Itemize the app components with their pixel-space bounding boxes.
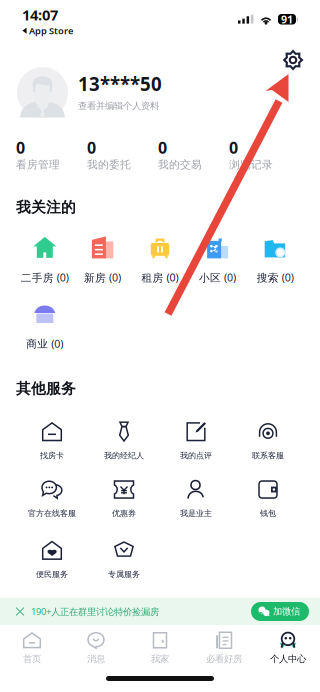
staticText: 0 [16, 137, 25, 158]
button[interactable]: 0 [87, 137, 158, 171]
button[interactable]: 租房 (0) [131, 235, 189, 285]
staticText: 优惠券 [112, 508, 136, 518]
staticText: 我家 [151, 653, 169, 665]
staticText: 租房 (0) [141, 270, 178, 285]
staticText: 0 [158, 137, 167, 158]
staticText: 我关注的 [16, 198, 76, 216]
staticText: 91 [281, 12, 293, 26]
button[interactable]: 小区 (0) [189, 235, 246, 285]
staticText: 查看并编辑个人资料 [78, 100, 159, 112]
button[interactable]: 13****50 [0, 46, 320, 118]
staticText: 商业 (0) [26, 336, 63, 351]
staticText: 14:07 [22, 5, 58, 24]
button[interactable]: 0 [16, 137, 87, 171]
staticText: 搜索 (0) [257, 270, 294, 285]
staticText: 专属服务 [108, 569, 140, 579]
staticText: 必看好房 [206, 653, 242, 665]
button[interactable]: 我的经纪人 [88, 422, 160, 460]
button[interactable]: 0 [229, 137, 300, 171]
button[interactable]: 首页 [0, 631, 64, 665]
staticText: 二手房 (0) [21, 270, 69, 285]
staticText: 钱包 [260, 508, 276, 518]
staticText: 我的交易 [158, 158, 202, 171]
button[interactable]: 我是业主 [160, 479, 232, 518]
button[interactable]: 必看好房 [192, 631, 256, 665]
staticText: 我是业主 [180, 508, 212, 518]
staticText: 我的点评 [180, 451, 212, 460]
button[interactable]: 便民服务 [16, 540, 88, 579]
staticText: 个人中心 [270, 653, 306, 665]
button[interactable]: 消息 [64, 631, 128, 665]
button[interactable]: 0 [158, 137, 229, 171]
staticText: 消息 [87, 653, 105, 665]
staticText: 便民服务 [36, 569, 68, 579]
staticText: 0 [229, 137, 238, 158]
staticText: 首页 [23, 653, 41, 665]
staticText: 浏览记录 [229, 158, 273, 171]
button[interactable]: 优惠券 [88, 479, 160, 518]
staticText: 我的委托 [87, 158, 131, 171]
staticText: 看房管理 [16, 158, 60, 171]
staticText: 联系客服 [252, 451, 284, 460]
staticText: 加微信 [273, 606, 300, 617]
button[interactable]: 联系客服 [232, 422, 304, 460]
staticText: 我的经纪人 [104, 451, 144, 460]
button[interactable]: 钱包 [232, 479, 304, 518]
staticText: 找房卡 [40, 451, 64, 460]
button[interactable]: 找房卡 [16, 422, 88, 460]
button[interactable]: 商业 (0) [16, 301, 74, 351]
button[interactable]: 官方在线客服 [16, 479, 88, 518]
button[interactable]: 加微信 [251, 602, 309, 621]
button[interactable]: 搜索 (0) [246, 235, 304, 285]
button[interactable]: 我的点评 [160, 422, 232, 460]
staticText: 小区 (0) [199, 270, 236, 285]
button[interactable]: 二手房 (0) [16, 235, 74, 285]
staticText: 官方在线客服 [28, 508, 76, 518]
button[interactable]: 新房 (0) [74, 235, 131, 285]
staticText: App Store [29, 24, 73, 37]
button[interactable]: Close [9, 598, 31, 625]
button[interactable]: 个人中心 [256, 631, 320, 665]
button[interactable]: 我家 [128, 631, 192, 665]
staticText: 0 [87, 137, 96, 158]
staticText: 其他服务 [16, 380, 76, 398]
staticText: 13****50 [78, 71, 162, 96]
button[interactable]: 专属服务 [88, 540, 160, 579]
staticText: 190+人正在群里讨论特价捡漏房 [31, 605, 159, 618]
staticText: 新房 (0) [84, 270, 121, 285]
button[interactable]: Settings [276, 43, 310, 77]
